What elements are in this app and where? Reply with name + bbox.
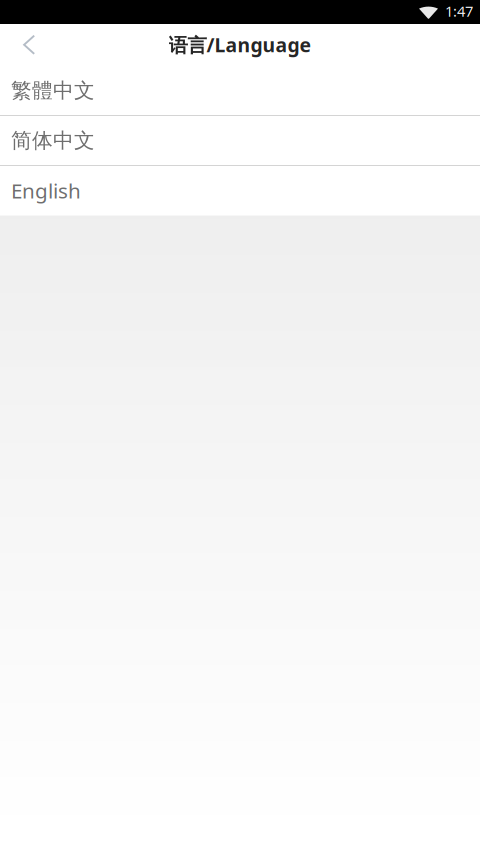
staticText: 语言/Language <box>168 32 311 58</box>
button[interactable]: 简体中文 <box>0 115 480 165</box>
button[interactable]: Back <box>0 24 58 65</box>
staticText: 简体中文 <box>11 127 95 153</box>
staticText: 1:47 <box>445 1 473 21</box>
staticText: English <box>11 176 81 204</box>
button[interactable]: 繁體中文 <box>0 65 480 115</box>
staticText: 繁體中文 <box>11 77 95 103</box>
button[interactable]: English <box>0 165 480 215</box>
